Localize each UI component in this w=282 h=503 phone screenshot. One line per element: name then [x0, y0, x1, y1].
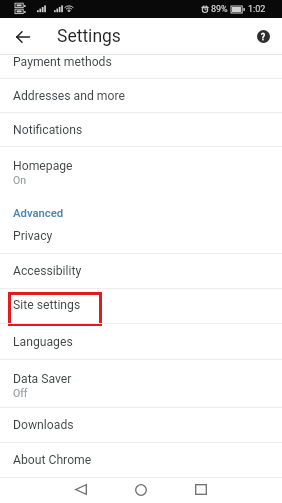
button[interactable]: Site settings — [0, 289, 282, 323]
staticText: Settings — [57, 26, 121, 47]
button[interactable]: Help and feedback — [251, 24, 275, 48]
button[interactable]: Accessibility — [0, 254, 282, 288]
button[interactable]: Notifications — [0, 113, 282, 146]
button[interactable]: Languages — [0, 324, 282, 359]
staticText: Data Saver — [13, 372, 72, 386]
button[interactable]: Back — [51, 478, 111, 503]
button[interactable]: Addresses and more — [0, 79, 282, 112]
staticText: Advanced — [13, 207, 64, 220]
staticText: Addresses and more — [13, 89, 125, 103]
staticText: Payment methods — [13, 55, 112, 69]
button[interactable]: Payment methods — [0, 55, 282, 78]
staticText: 89% — [211, 4, 228, 15]
staticText: Privacy — [13, 229, 53, 243]
button[interactable]: Homepage — [0, 147, 282, 188]
staticText: Off — [13, 387, 28, 399]
button[interactable]: Privacy — [0, 218, 282, 253]
staticText: Site settings — [13, 298, 81, 312]
staticText: Homepage — [13, 159, 73, 173]
button[interactable]: Navigate up — [9, 23, 36, 50]
staticText: ? — [261, 32, 266, 42]
staticText: Accessibility — [13, 264, 82, 278]
staticText: Languages — [13, 335, 73, 349]
staticText: 1:02 — [248, 4, 266, 15]
staticText: Downloads — [13, 418, 74, 432]
button[interactable]: Downloads — [0, 408, 282, 442]
staticText: On — [13, 174, 27, 186]
button[interactable]: Recent apps — [171, 478, 231, 503]
button[interactable]: About Chrome — [0, 443, 282, 477]
staticText: About Chrome — [13, 453, 92, 467]
button[interactable]: Home — [111, 478, 171, 503]
staticText: Notifications — [13, 123, 83, 137]
button[interactable]: Data Saver — [0, 360, 282, 407]
